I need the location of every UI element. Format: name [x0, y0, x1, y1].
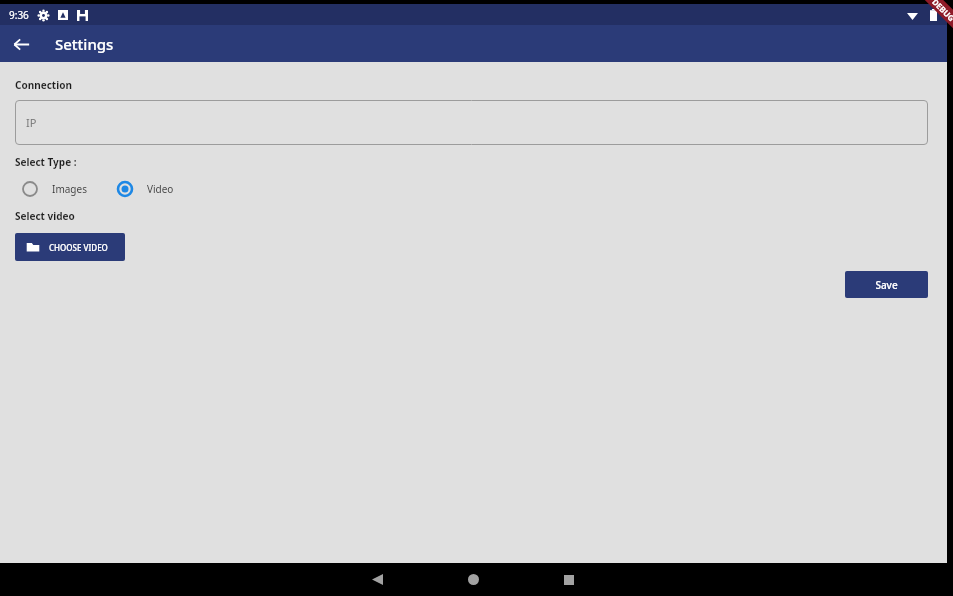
button[interactable]: Home — [456, 563, 490, 596]
staticText: Select Type : — [15, 155, 77, 169]
staticText: Video — [147, 182, 174, 196]
button[interactable]: IP — [15, 100, 928, 145]
button[interactable]: CHOOSE VIDEO — [15, 233, 125, 261]
staticText: Settings — [55, 34, 114, 54]
button[interactable]: Recent apps — [552, 563, 586, 596]
staticText: Save — [875, 278, 898, 292]
button[interactable]: Video — [115, 179, 174, 199]
staticText: Images — [52, 182, 87, 196]
staticText: IP — [26, 115, 37, 130]
button[interactable]: Save — [845, 271, 928, 298]
button[interactable]: Back — [8, 31, 34, 57]
button[interactable]: Images — [20, 179, 87, 199]
staticText: 9:36 — [9, 8, 29, 22]
staticText: Select video — [15, 209, 75, 223]
staticText: Connection — [15, 78, 72, 92]
staticText: DEBUG — [930, 0, 953, 24]
staticText: CHOOSE VIDEO — [49, 242, 108, 253]
button[interactable]: Back — [360, 563, 394, 596]
